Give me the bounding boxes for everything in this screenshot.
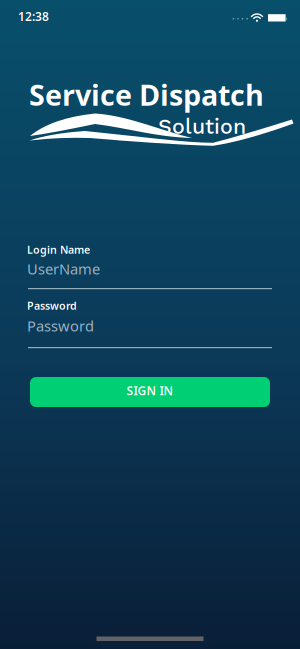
staticText: SIGN IN: [126, 382, 173, 398]
staticText: Login Name: [27, 242, 90, 257]
staticText: Service Dispatch: [29, 75, 264, 114]
staticText: UserName: [27, 259, 100, 278]
staticText: 12:38: [18, 8, 49, 24]
button[interactable]: UserName: [27, 258, 273, 290]
button[interactable]: Password: [27, 315, 273, 349]
staticText: Password: [27, 298, 77, 313]
staticText: Password: [27, 316, 94, 335]
staticText: Solution: [158, 114, 246, 139]
button[interactable]: SIGN IN: [30, 377, 270, 407]
